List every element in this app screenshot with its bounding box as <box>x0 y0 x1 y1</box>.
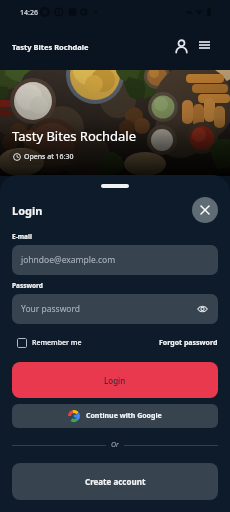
button[interactable]: Login <box>12 362 218 398</box>
button[interactable]: Account <box>170 34 192 56</box>
button[interactable]: Show password <box>195 302 209 316</box>
button[interactable]: Create account <box>12 463 218 500</box>
staticText: Tasty Bites Rochdale <box>12 42 89 52</box>
staticText: Forgot password <box>159 338 218 348</box>
button[interactable]: Menu <box>193 34 215 56</box>
button[interactable]: Continue with Google <box>12 404 218 428</box>
button[interactable]: Close <box>192 197 218 223</box>
staticText: E-mail <box>12 232 32 241</box>
button[interactable]: Forgot password <box>159 338 218 348</box>
staticText: 14:26 <box>20 8 38 18</box>
staticText: Create account <box>85 476 146 487</box>
staticText: Password <box>12 281 43 290</box>
staticText: Opens at 16:30 <box>24 152 74 162</box>
staticText: Login <box>104 375 126 386</box>
staticText: Login <box>12 203 43 218</box>
staticText: johndoe@example.com <box>21 254 116 266</box>
button[interactable]: Your password <box>12 294 218 324</box>
staticText: Continue with Google <box>86 411 162 421</box>
button[interactable]: johndoe@example.com <box>12 245 218 275</box>
staticText: Remember me <box>32 338 82 348</box>
staticText: Your password <box>21 303 81 315</box>
staticText: Tasty Bites Rochdale <box>12 127 137 145</box>
staticText: Or <box>111 440 119 450</box>
button[interactable]: Remember me <box>12 338 82 348</box>
